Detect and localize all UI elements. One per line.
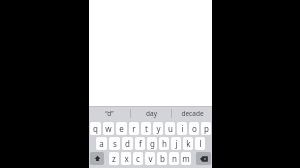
button[interactable]: y — [153, 122, 163, 135]
staticText: y — [156, 123, 161, 134]
staticText: day — [146, 109, 157, 118]
button[interactable]: h — [159, 137, 169, 150]
staticText: e — [119, 123, 124, 134]
button[interactable]: d — [122, 137, 133, 150]
button[interactable]: o — [189, 122, 199, 135]
staticText: c — [136, 153, 140, 164]
staticText: h — [162, 138, 167, 149]
button[interactable]: a — [96, 137, 107, 150]
button[interactable]: m — [181, 152, 191, 165]
staticText: m — [182, 153, 190, 164]
button[interactable]: b — [157, 152, 167, 165]
button[interactable]: q — [90, 122, 101, 135]
staticText: t — [145, 123, 148, 134]
button[interactable]: z — [109, 152, 119, 165]
button[interactable]: Shift — [90, 152, 104, 165]
button[interactable]: x — [121, 152, 131, 165]
staticText: x — [124, 153, 129, 164]
button[interactable]: s — [109, 137, 120, 150]
staticText: v — [148, 153, 153, 164]
button[interactable]: e — [116, 122, 127, 135]
button[interactable]: r — [129, 122, 139, 135]
staticText: i — [181, 123, 184, 134]
button[interactable]: day — [131, 106, 171, 121]
staticText: f — [139, 138, 142, 149]
staticText: g — [150, 138, 155, 149]
staticText: p — [204, 123, 209, 134]
button[interactable]: t — [141, 122, 151, 135]
staticText: b — [160, 153, 165, 164]
staticText: k — [186, 138, 191, 149]
staticText: “d” — [105, 109, 114, 118]
button[interactable]: decade — [172, 106, 212, 121]
button[interactable]: j — [171, 137, 181, 150]
staticText: l — [199, 138, 202, 149]
staticText: q — [93, 123, 98, 134]
button[interactable]: n — [169, 152, 179, 165]
staticText: z — [112, 153, 116, 164]
button[interactable]: “d” — [89, 106, 130, 121]
button[interactable]: p — [201, 122, 211, 135]
staticText: decade — [181, 109, 204, 118]
staticText: n — [172, 153, 177, 164]
button[interactable]: l — [195, 137, 205, 150]
button[interactable]: w — [103, 122, 114, 135]
button[interactable]: u — [165, 122, 175, 135]
staticText: o — [192, 123, 197, 134]
staticText: r — [132, 123, 136, 134]
button[interactable]: c — [133, 152, 143, 165]
staticText: s — [113, 138, 117, 149]
staticText: u — [168, 123, 173, 134]
staticText: d — [125, 138, 130, 149]
button[interactable]: f — [135, 137, 145, 150]
staticText: w — [105, 123, 112, 134]
button[interactable]: i — [177, 122, 187, 135]
staticText: a — [99, 138, 104, 149]
button[interactable]: Backspace — [196, 152, 211, 165]
staticText: j — [175, 138, 178, 149]
button[interactable]: g — [147, 137, 157, 150]
button[interactable]: v — [145, 152, 155, 165]
button[interactable]: k — [183, 137, 193, 150]
